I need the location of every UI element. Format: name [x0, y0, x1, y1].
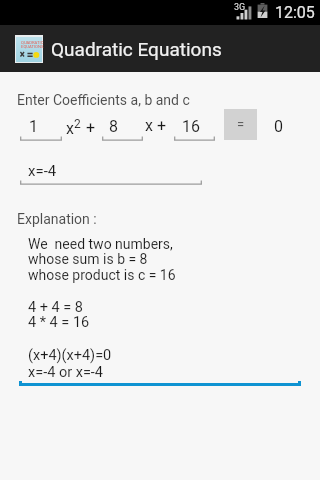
staticText: 16: [182, 117, 200, 136]
staticText: 12:05: [275, 3, 315, 22]
button[interactable]: Coefficient 16: [174, 117, 215, 143]
staticText: 4 + 4 = 8: [28, 299, 84, 316]
staticText: +: [86, 118, 96, 137]
staticText: 0: [274, 117, 283, 136]
button[interactable]: Coefficient 1: [20, 117, 62, 143]
staticText: =: [237, 117, 245, 132]
staticText: QUADRATIC: [21, 40, 44, 45]
button[interactable]: Roots: [20, 162, 202, 188]
staticText: 1: [29, 117, 38, 136]
staticText: x2: [66, 117, 81, 138]
staticText: Enter Coefficients a, b and c: [17, 92, 190, 108]
staticText: Explanation :: [17, 211, 97, 227]
button[interactable]: Solve equation: [224, 109, 257, 140]
staticText: (x+4)(x+4)=0: [28, 347, 112, 364]
staticText: whose product is c = 16: [28, 267, 176, 283]
staticText: x=-4 or x=-4: [28, 364, 103, 381]
staticText: 8: [109, 117, 118, 136]
other: Battery charging: [257, 3, 268, 18]
staticText: 4 * 4 = 16: [28, 314, 90, 331]
button[interactable]: Quadratic Equations app icon: [0, 25, 232, 72]
staticText: whose sum is b = 8: [28, 251, 148, 267]
other: Quadratic Equations app icon: [15, 35, 43, 63]
button[interactable]: Coefficient 8: [102, 117, 143, 143]
staticText: We need two numbers,: [28, 236, 173, 252]
staticText: 3G: [234, 2, 246, 13]
staticText: x=-4: [28, 162, 57, 180]
other: 3G signal strength: [233, 2, 252, 20]
staticText: EQUATIONS: [21, 44, 44, 49]
staticText: Quadratic Equations: [51, 38, 222, 60]
staticText: x +: [145, 116, 166, 135]
